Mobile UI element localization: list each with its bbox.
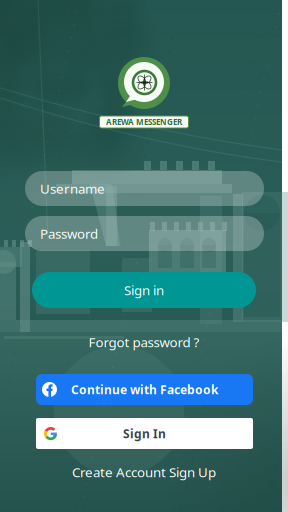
- button[interactable]: Username: [25, 171, 264, 206]
- button[interactable]: Forgot password ?: [74, 333, 214, 351]
- button[interactable]: Continue with Facebook: [36, 374, 253, 405]
- button[interactable]: Sign in: [32, 272, 256, 308]
- staticText: Create Account Sign Up: [72, 463, 216, 481]
- staticText: Continue with Facebook: [71, 381, 218, 397]
- staticText: Sign in: [124, 281, 164, 299]
- button[interactable]: Password: [25, 216, 264, 251]
- button[interactable]: Create Account Sign Up: [54, 463, 234, 481]
- staticText: Sign In: [123, 425, 166, 441]
- button[interactable]: Sign In: [36, 418, 253, 449]
- staticText: Password: [40, 225, 98, 242]
- staticText: Username: [40, 180, 105, 197]
- staticText: Forgot password ?: [88, 333, 199, 351]
- staticText: AREWA MESSENGER: [106, 117, 182, 127]
